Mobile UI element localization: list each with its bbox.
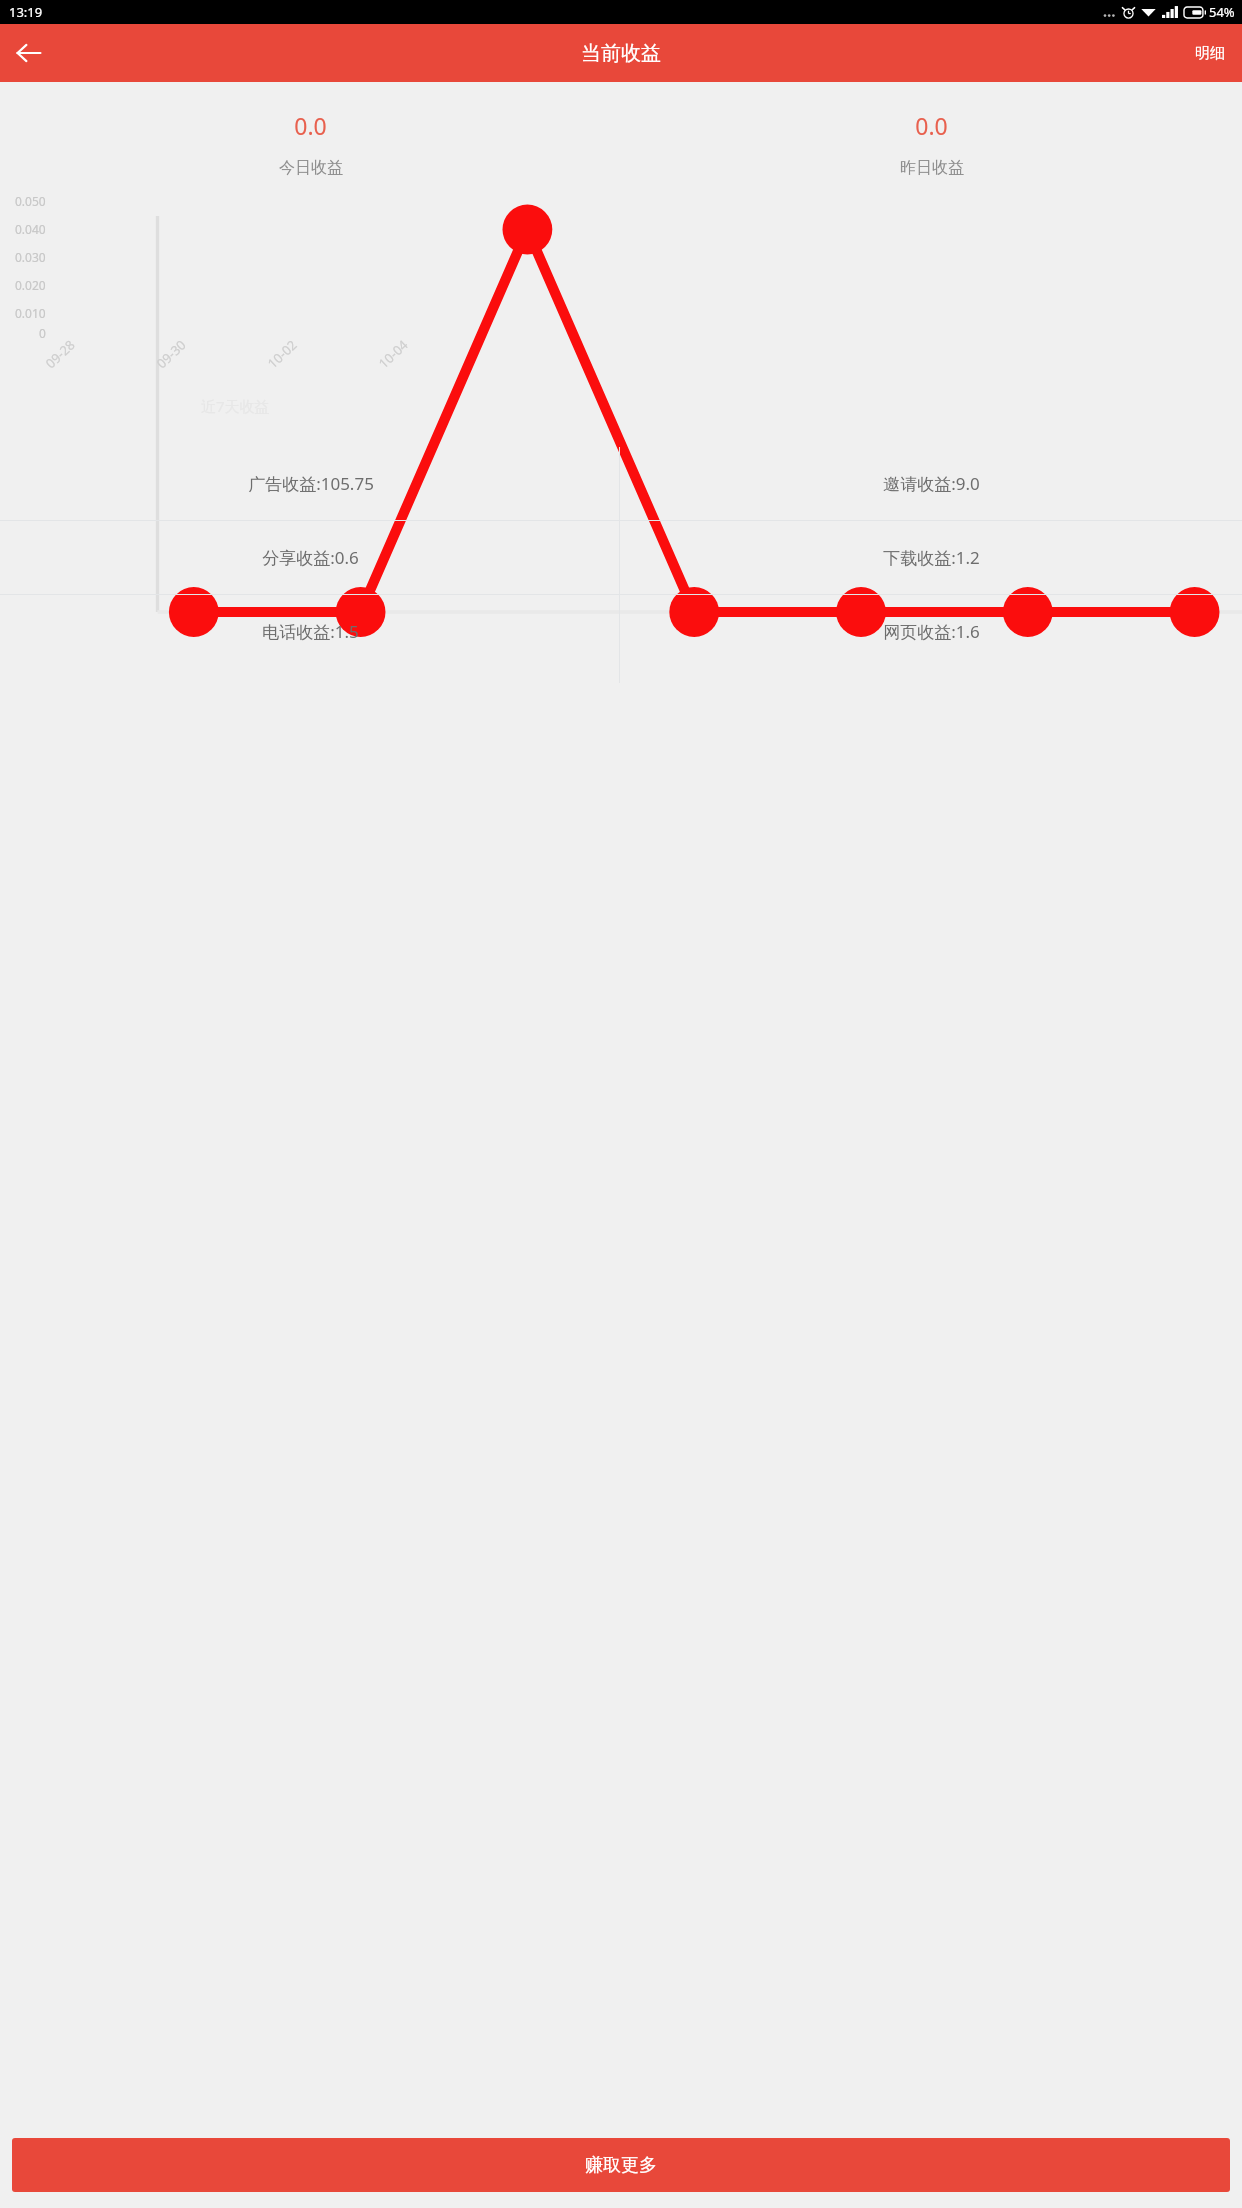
staticText: 0.050 bbox=[15, 193, 46, 209]
staticText: 赚取更多 bbox=[585, 2154, 657, 2177]
staticText: 0.020 bbox=[15, 277, 46, 293]
staticText: 0.030 bbox=[15, 249, 46, 265]
staticText: 13:19 bbox=[9, 3, 43, 21]
staticText: 邀请收益:9.0 bbox=[883, 472, 980, 495]
staticText: 下载收益:1.2 bbox=[883, 546, 980, 569]
button[interactable]: 明细 bbox=[1178, 30, 1242, 77]
button[interactable]: 0.0 bbox=[0, 106, 621, 182]
button[interactable]: 电话收益:1.5 bbox=[0, 595, 621, 668]
staticText: 电话收益:1.5 bbox=[262, 620, 359, 643]
button[interactable]: 广告收益:105.75 bbox=[0, 447, 621, 520]
staticText: 10-04 bbox=[374, 336, 411, 372]
staticText: 今日收益 bbox=[279, 158, 343, 178]
staticText: 0.040 bbox=[15, 221, 46, 237]
staticText: 网页收益:1.6 bbox=[883, 620, 980, 643]
button[interactable]: 邀请收益:9.0 bbox=[621, 447, 1242, 520]
button[interactable]: 网页收益:1.6 bbox=[621, 595, 1242, 668]
staticText: 54% bbox=[1209, 3, 1235, 21]
button[interactable]: 分享收益:0.6 bbox=[0, 521, 621, 594]
staticText: 09-30 bbox=[152, 336, 189, 372]
staticText: 昨日收益 bbox=[900, 158, 964, 178]
button[interactable]: 下载收益:1.2 bbox=[621, 521, 1242, 594]
staticText: 广告收益:105.75 bbox=[248, 472, 374, 495]
staticText: 0 bbox=[39, 325, 46, 341]
staticText: 0.010 bbox=[15, 305, 46, 321]
staticText: 0.0 bbox=[294, 110, 327, 141]
staticText: 分享收益:0.6 bbox=[262, 546, 359, 569]
staticText: 近7天收益 bbox=[201, 396, 270, 416]
button[interactable]: 0.0 bbox=[621, 106, 1242, 182]
staticText: 当前收益 bbox=[581, 41, 661, 66]
staticText: 0.0 bbox=[915, 110, 948, 141]
staticText: 明细 bbox=[1195, 44, 1225, 63]
button[interactable]: Back bbox=[4, 28, 54, 78]
button[interactable]: 赚取更多 bbox=[12, 2138, 1230, 2192]
staticText: 09-28 bbox=[41, 336, 78, 372]
staticText: 10-02 bbox=[263, 336, 300, 372]
